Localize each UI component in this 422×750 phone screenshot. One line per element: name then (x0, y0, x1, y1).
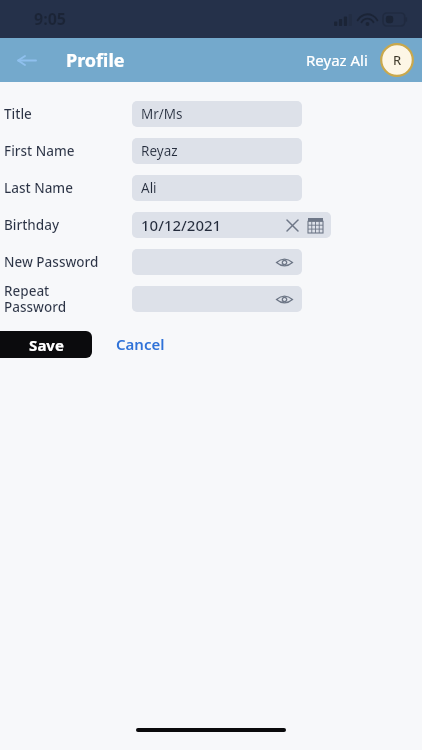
button[interactable]: Show password (132, 249, 302, 275)
button[interactable]: Ali (132, 175, 302, 201)
staticText: 9:05 (34, 8, 66, 30)
button[interactable]: Clear date (282, 215, 302, 235)
button[interactable]: 10/12/2021 (132, 212, 331, 238)
button[interactable]: Pick date (304, 214, 326, 236)
staticText: Title (4, 105, 134, 123)
button[interactable]: Cancel (116, 334, 165, 354)
staticText: Repeat Password (4, 282, 134, 316)
button[interactable]: Back (8, 42, 44, 78)
button[interactable]: Save (0, 331, 92, 358)
button[interactable]: Reyaz Ali (306, 43, 414, 77)
staticText: Save (29, 335, 64, 355)
button[interactable]: Show password (272, 250, 296, 274)
button[interactable]: Reyaz (132, 138, 302, 164)
staticText: New Password (4, 253, 134, 271)
staticText: 10/12/2021 (141, 215, 222, 235)
staticText: Birthday (4, 216, 134, 234)
staticText: Profile (66, 48, 125, 73)
staticText: Last Name (4, 179, 134, 197)
staticText: R (393, 51, 402, 69)
staticText: Cancel (116, 334, 165, 354)
button[interactable]: Mr/Ms (132, 101, 302, 127)
staticText: Reyaz (141, 142, 178, 160)
button[interactable]: Show password (272, 287, 296, 311)
staticText: First Name (4, 142, 134, 160)
staticText: Mr/Ms (141, 105, 183, 123)
button[interactable]: Show password (132, 286, 302, 312)
staticText: Reyaz Ali (306, 50, 368, 70)
staticText: Ali (141, 179, 157, 197)
